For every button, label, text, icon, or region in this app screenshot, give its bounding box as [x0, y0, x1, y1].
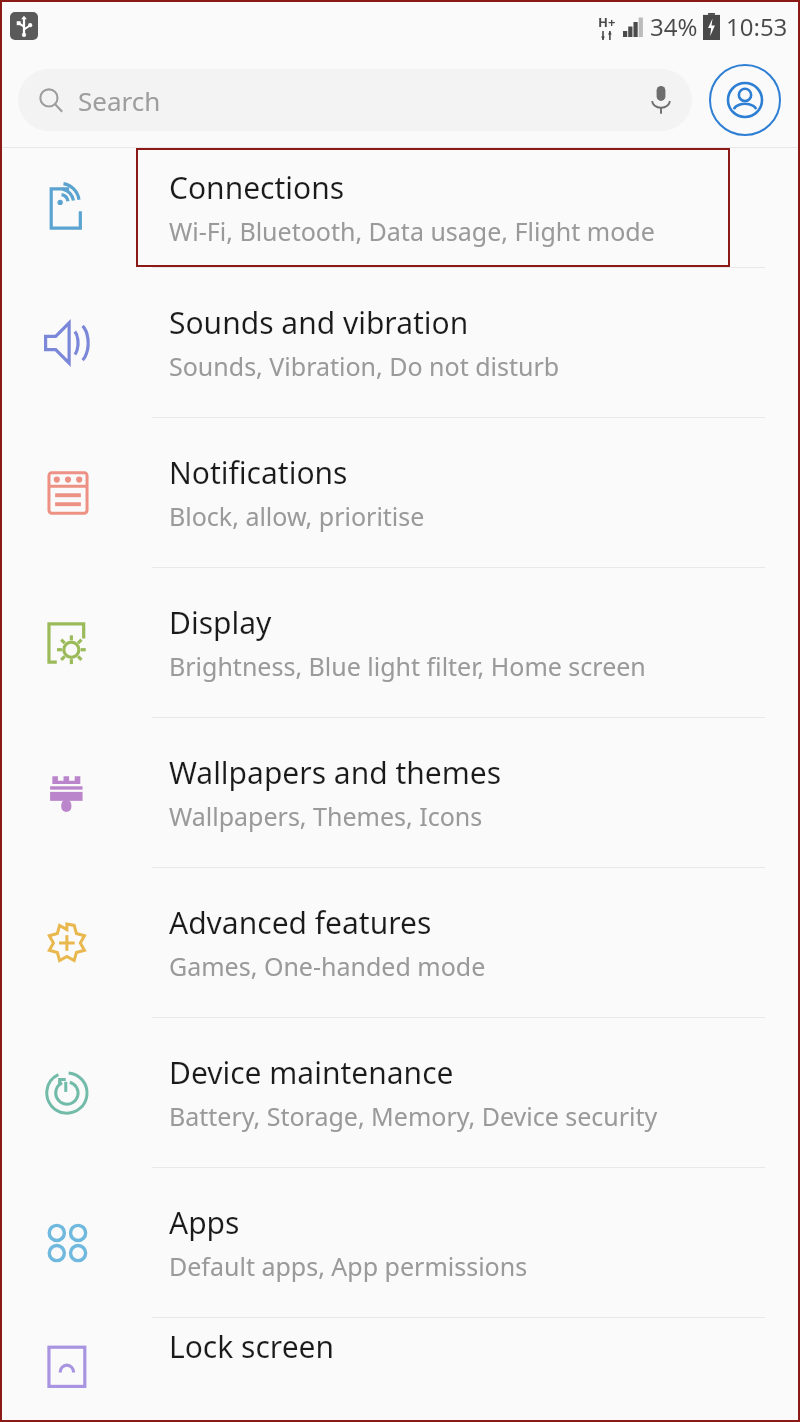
staticText: Notifications — [169, 452, 348, 493]
staticText: Sounds, Vibration, Do not disturb — [169, 349, 560, 383]
staticText: Connections — [169, 167, 345, 208]
staticText: Advanced features — [169, 902, 432, 943]
staticText: Games, One-handed mode — [169, 949, 486, 983]
staticText: Wallpapers, Themes, Icons — [169, 799, 483, 833]
staticText: Device maintenance — [169, 1052, 454, 1093]
staticText: Search — [78, 83, 161, 118]
staticText: Sounds and vibration — [169, 302, 469, 343]
button[interactable]: Lock screen — [0, 1318, 800, 1398]
staticText: H+ — [598, 13, 616, 31]
staticText: Lock screen — [169, 1326, 335, 1367]
staticText: Wi-Fi, Bluetooth, Data usage, Flight mod… — [169, 214, 655, 248]
button[interactable]: Device maintenance — [0, 1018, 800, 1167]
staticText: Brightness, Blue light filter, Home scre… — [169, 649, 646, 683]
staticText: Display — [169, 602, 272, 643]
staticText: Default apps, App permissions — [169, 1249, 528, 1283]
staticText: Block, allow, prioritise — [169, 499, 425, 533]
button[interactable]: Notifications — [0, 418, 800, 567]
staticText: Wallpapers and themes — [169, 752, 502, 793]
button[interactable]: Search — [18, 69, 692, 131]
button[interactable]: Advanced features — [0, 868, 800, 1017]
button[interactable]: Wallpapers and themes — [0, 718, 800, 867]
button[interactable]: Connections — [0, 148, 800, 267]
button[interactable]: Display — [0, 568, 800, 717]
other: Voice search — [650, 85, 672, 115]
button[interactable]: Account — [708, 63, 782, 137]
button[interactable]: Sounds and vibration — [0, 268, 800, 417]
staticText: 34% — [650, 10, 698, 43]
button[interactable]: Apps — [0, 1168, 800, 1317]
staticText: 10:53 — [726, 10, 788, 43]
staticText: Apps — [169, 1202, 240, 1243]
staticText: Battery, Storage, Memory, Device securit… — [169, 1099, 658, 1133]
